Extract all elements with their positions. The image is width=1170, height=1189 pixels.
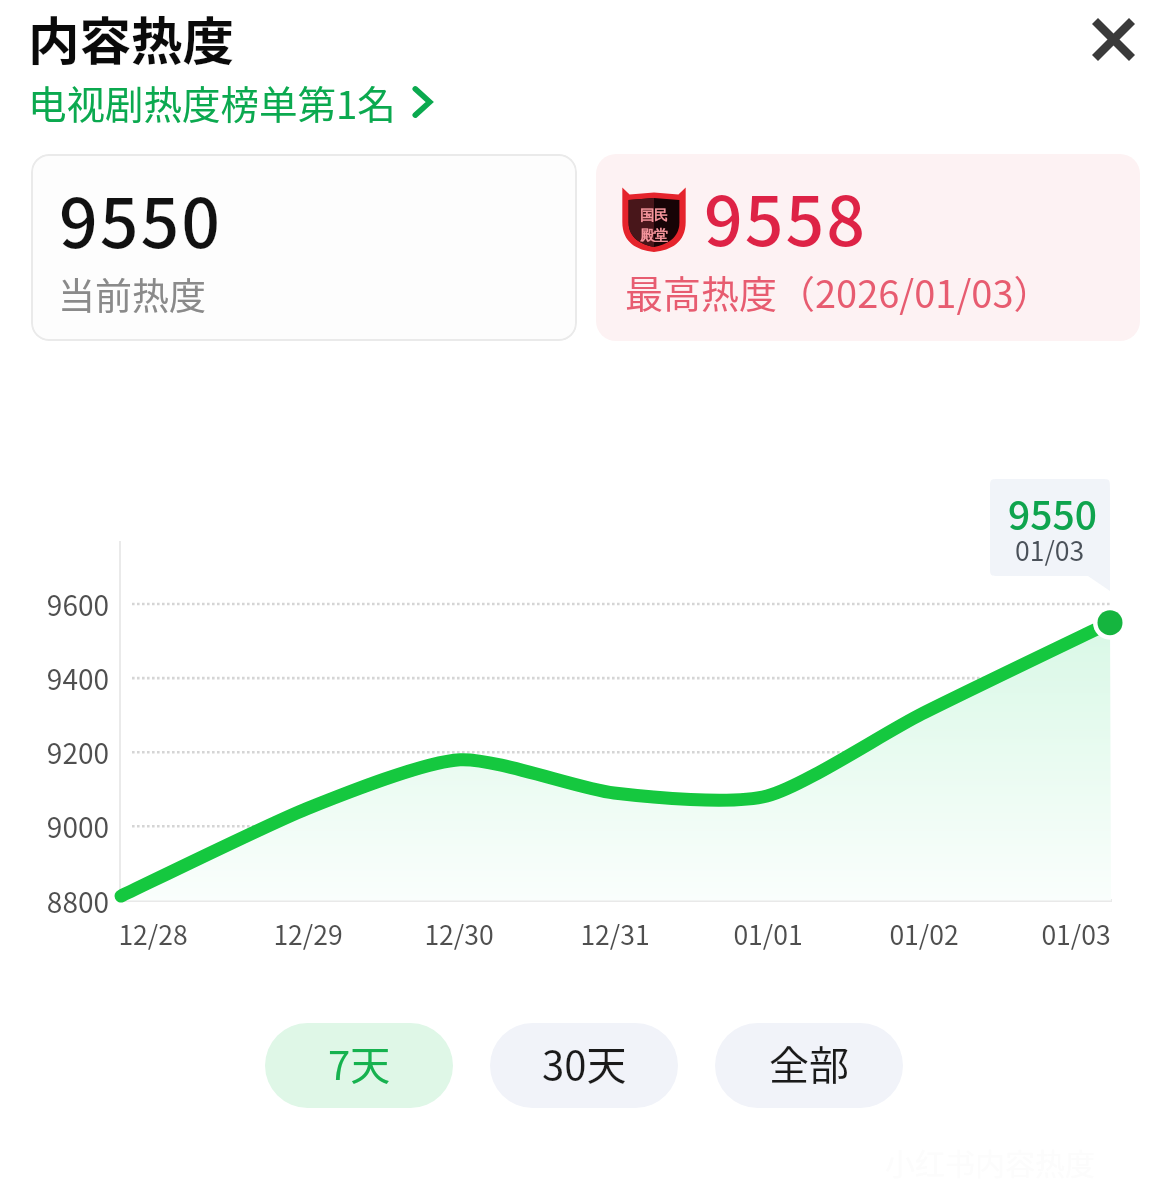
staticText: 9550 [1008,485,1097,541]
staticText: 全部 [769,1034,849,1092]
button[interactable]: 电视剧热度榜单第1名 [28,74,432,130]
staticText: 9200 [0,732,109,773]
staticText: 12/29 [248,914,368,952]
staticText: 9400 [0,658,109,699]
staticText: 9558 [704,167,868,265]
staticText: 8800 [0,881,109,922]
staticText: 当前热度 [58,267,206,321]
button[interactable]: 国民 [596,154,1140,341]
button[interactable]: 30天 [490,1023,678,1108]
staticText: 9000 [0,806,109,847]
button[interactable]: 9550 [31,154,577,341]
button[interactable]: 全部 [715,1023,903,1108]
staticText: 9550 [59,169,223,267]
staticText: 最高热度（2026/01/03） [625,264,1052,319]
staticText: 电视剧热度榜单第1名 [28,74,396,130]
staticText: 01/03 [1016,914,1136,952]
button[interactable]: 7天 [265,1023,453,1108]
staticText: 12/31 [555,914,675,952]
staticText: 9600 [0,584,109,625]
staticText: 01/02 [864,914,984,952]
staticText: 内容热度 [28,0,235,75]
staticText: 国民 [640,207,668,225]
staticText: 12/30 [399,914,519,952]
staticText: 01/03 [1015,530,1085,568]
button[interactable]: Close [1083,9,1143,69]
staticText: 12/28 [93,914,213,952]
staticText: 7天 [328,1034,391,1092]
staticText: 殿堂 [640,227,668,245]
staticText: 30天 [542,1034,627,1092]
staticText: 01/01 [708,914,828,952]
